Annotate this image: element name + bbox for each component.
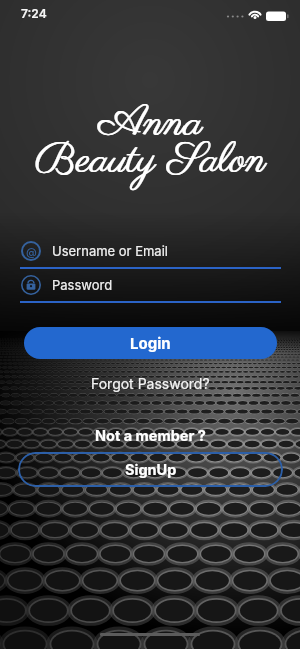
button[interactable]: @ xyxy=(20,240,281,262)
staticText: Beauty Salon xyxy=(0,133,300,189)
staticText: Password xyxy=(52,277,113,293)
staticText: Username or Email xyxy=(52,243,168,259)
staticText: @ xyxy=(26,245,37,258)
button[interactable]: Login xyxy=(24,327,277,359)
staticText: 7:24 xyxy=(21,6,47,21)
staticText: Beauty Salon xyxy=(1,133,300,189)
staticText: SignUp xyxy=(125,461,177,479)
staticText: Anna xyxy=(0,96,300,152)
staticText: Login xyxy=(130,334,171,352)
button[interactable]: Password xyxy=(20,274,281,296)
button[interactable]: Forgot Password? xyxy=(91,375,210,392)
button[interactable]: SignUp xyxy=(18,452,283,487)
staticText: Not a member ? xyxy=(95,427,206,445)
staticText: Anna xyxy=(1,96,300,152)
staticText: Forgot Password? xyxy=(91,375,210,392)
